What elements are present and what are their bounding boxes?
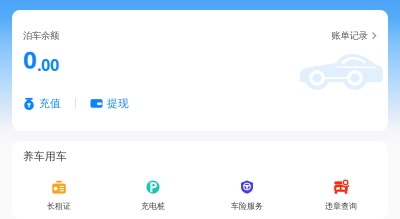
staticText: 养车用车 [23, 150, 67, 163]
staticText: .00 [37, 54, 59, 75]
staticText: 账单记录 [331, 30, 367, 41]
staticText: 泊车余额 [23, 30, 59, 41]
staticText: 车险服务 [231, 201, 263, 211]
button[interactable]: 账单记录 [331, 30, 377, 41]
button[interactable]: 长租证 [12, 179, 106, 211]
staticText: 0 [23, 43, 37, 75]
button[interactable]: 充值 [23, 97, 61, 110]
button[interactable]: 车险服务 [200, 179, 294, 211]
staticText: 充值 [39, 97, 61, 110]
button[interactable]: P [106, 179, 200, 211]
staticText: 充电桩 [141, 201, 165, 211]
staticText: 违章查询 [325, 201, 357, 211]
staticText: P [149, 178, 157, 196]
staticText: 提现 [107, 97, 129, 110]
button[interactable]: 违章查询 [294, 179, 388, 211]
button[interactable]: 提现 [90, 97, 129, 110]
staticText: 长租证 [47, 201, 71, 211]
